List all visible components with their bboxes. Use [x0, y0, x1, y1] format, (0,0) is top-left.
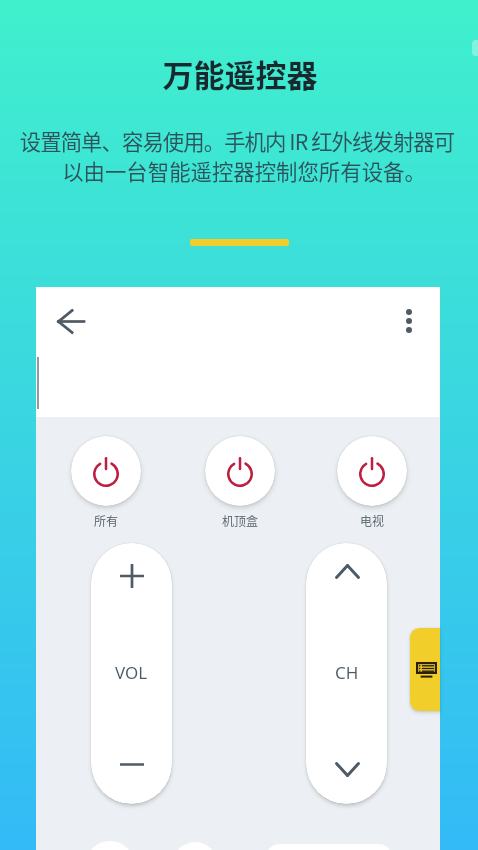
button[interactable]: TV guide: [410, 628, 440, 711]
staticText: VOL: [115, 661, 148, 684]
button[interactable]: [267, 844, 391, 850]
staticText: 设置简单、容易使用。手机内 IR 红外线发射器可: [0, 125, 476, 156]
button[interactable]: 所有: [66, 436, 146, 532]
button[interactable]: CH: [306, 543, 387, 804]
staticText: 所有: [94, 512, 119, 529]
staticText: 以由一台智能遥控器控制您所有设备。: [5, 155, 478, 186]
button[interactable]: [86, 841, 134, 850]
staticText: 电视: [360, 512, 385, 529]
button[interactable]: 机顶盒: [200, 436, 280, 532]
staticText: 机顶盒: [222, 512, 259, 529]
staticText: 万能遥控器: [1, 51, 478, 96]
button[interactable]: VOL: [91, 543, 172, 804]
button[interactable]: [173, 842, 217, 850]
staticText: CH: [335, 661, 359, 684]
button[interactable]: More options: [385, 297, 433, 345]
button[interactable]: Back: [45, 297, 95, 345]
button[interactable]: 电视: [332, 436, 412, 532]
